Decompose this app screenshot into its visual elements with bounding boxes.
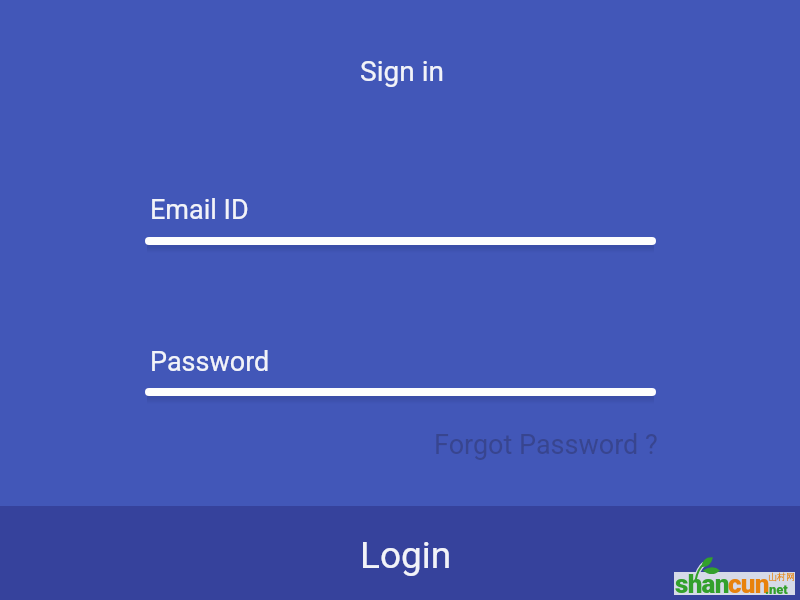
staticText: Sign in xyxy=(2,55,800,88)
staticText: cun xyxy=(728,569,769,599)
button[interactable]: Login xyxy=(0,506,800,600)
button[interactable] xyxy=(140,338,661,404)
staticText: shan xyxy=(675,569,729,599)
staticText: Password xyxy=(150,346,270,378)
staticText: 山村网 xyxy=(768,571,795,582)
button[interactable] xyxy=(140,186,661,253)
staticText: .net xyxy=(765,582,788,597)
staticText: Forgot Password ? xyxy=(434,429,658,461)
button[interactable]: Forgot Password ? xyxy=(428,423,664,467)
staticText: Login xyxy=(360,534,452,577)
staticText: Email ID xyxy=(150,194,249,226)
